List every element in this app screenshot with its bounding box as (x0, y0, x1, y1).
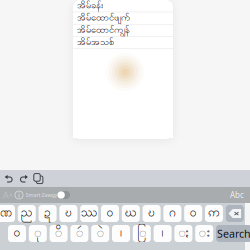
staticText: ဎ (65, 205, 72, 222)
button[interactable]: Undo (2, 170, 16, 187)
button[interactable]: ဂ (163, 205, 181, 222)
button[interactable]: ဎ (59, 205, 77, 222)
button[interactable]: ဝ (184, 205, 202, 222)
button[interactable]: ဍ (39, 205, 57, 222)
staticText: Abc (230, 190, 244, 200)
button[interactable]: အိမ်ထောင်ကျွန် (73, 24, 173, 37)
button[interactable]: ဝ (8, 225, 26, 242)
button[interactable]: း (195, 225, 213, 242)
staticText: ဿ (81, 205, 98, 222)
button[interactable]: ဝ (101, 205, 119, 222)
staticText: Smart Zawgyi (25, 191, 58, 199)
staticText: ဝ (13, 225, 20, 242)
button[interactable]: Abc (230, 187, 244, 203)
staticText: ဏ (0, 205, 12, 222)
button[interactable]: ဿ (80, 205, 98, 222)
button[interactable]: ဴ (70, 225, 88, 242)
button[interactable]: ဏ (0, 205, 15, 222)
staticText: ဂ (169, 205, 176, 222)
button[interactable]: အိမ်ခန်း (73, 0, 173, 12)
button[interactable]: အိမ်အသစ် (73, 37, 173, 49)
staticText: အိမ်ခန်း (77, 0, 103, 12)
staticText: A (9, 191, 12, 199)
staticText: ဢ (208, 205, 220, 222)
button[interactable]: ႏ (174, 225, 192, 242)
button[interactable]: ဃ (122, 205, 140, 222)
button[interactable]: ု (29, 225, 47, 242)
button[interactable]: ည (18, 205, 36, 222)
staticText: ည (21, 205, 33, 222)
staticText: ဝ (190, 205, 197, 222)
button[interactable]: ိ (50, 225, 68, 242)
staticText: ႏ (178, 225, 188, 242)
button[interactable]: Text size (2, 187, 13, 203)
button[interactable]: Redo (17, 170, 31, 187)
button[interactable]: အိမ်ထောင်ဖျက် (73, 12, 173, 24)
button[interactable]: Search (216, 225, 250, 242)
staticText: ဝ (106, 205, 113, 222)
staticText: ဴ (76, 225, 83, 242)
staticText: ဍ (44, 205, 51, 222)
staticText: ု (34, 225, 41, 242)
staticText: ၊ (162, 225, 164, 242)
button[interactable]: ြ (133, 225, 151, 242)
staticText: ြ (137, 225, 146, 242)
button[interactable]: ဲ (91, 225, 109, 242)
staticText: ဎ (148, 205, 155, 222)
staticText: အိမ်အသစ် (77, 36, 114, 49)
button[interactable]: ဎ (143, 205, 161, 222)
staticText: ဃ (125, 205, 137, 222)
staticText: ဲ (97, 225, 104, 242)
staticText: ၊ (120, 225, 122, 242)
staticText: Search (217, 226, 250, 241)
button[interactable]: ၊ (112, 225, 130, 242)
staticText: း (199, 225, 210, 242)
staticText: အိမ်ထောင်ကျွန် (77, 24, 130, 37)
button[interactable]: About Smart Zawgyi (13, 187, 25, 203)
staticText: A (3, 189, 9, 201)
button[interactable]: Backspace (226, 205, 244, 222)
button[interactable]: ၊ (154, 225, 172, 242)
button[interactable]: Smart Zawgyi toggle (57, 191, 70, 199)
button[interactable]: ဢ (205, 205, 223, 222)
button[interactable]: Paste (31, 170, 45, 187)
staticText: အိမ်ထောင်ဖျက် (77, 11, 130, 25)
staticText: ိ (55, 225, 62, 242)
